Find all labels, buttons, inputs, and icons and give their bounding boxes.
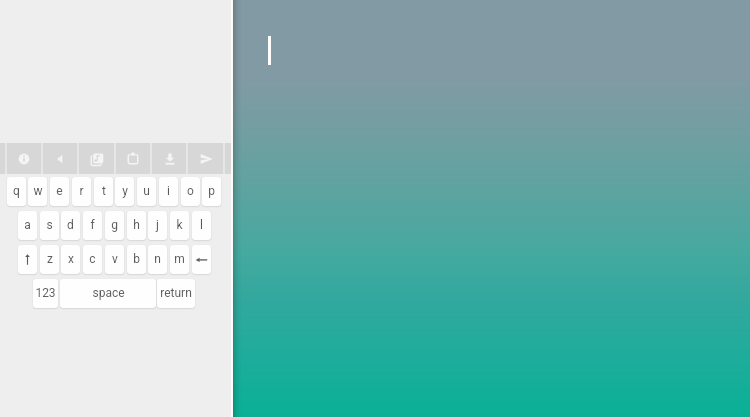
button[interactable]: u [137,177,156,206]
staticText: p [208,184,215,198]
staticText: h [133,218,140,232]
staticText: 123 [35,286,56,300]
staticText: m [174,252,185,266]
button[interactable]: n [148,245,167,274]
button[interactable]: Backspace [192,245,211,274]
staticText: w [33,184,43,198]
button[interactable]: c [83,245,102,274]
button[interactable]: e [50,177,69,206]
button[interactable]: q [7,177,26,206]
staticText: q [13,184,20,198]
button[interactable]: Shift [18,245,37,274]
staticText: o [187,184,194,198]
button[interactable]: space [60,279,156,308]
button[interactable]: Sound [43,143,78,174]
staticText: d [67,218,74,232]
staticText: u [143,184,150,198]
button[interactable]: x [61,245,80,274]
button[interactable]: o [181,177,200,206]
staticText: n [154,252,161,266]
staticText: a [24,218,31,232]
staticText: x [68,252,74,266]
staticText: j [156,218,159,232]
button[interactable]: i [159,177,178,206]
staticText: b [133,252,140,266]
button[interactable]: v [105,245,124,274]
staticText: space [92,286,125,300]
button[interactable]: Clipboard [115,143,150,174]
button[interactable]: j [148,211,167,240]
button[interactable]: p [202,177,221,206]
button[interactable]: z [40,245,59,274]
button[interactable]: w [28,177,47,206]
button[interactable]: Music library [79,143,114,174]
button[interactable]: m [170,245,189,274]
button[interactable]: return [157,279,195,308]
button[interactable]: g [105,211,124,240]
button[interactable]: Download [152,143,187,174]
button[interactable]: s [40,211,59,240]
button[interactable]: 123 [33,279,58,308]
staticText: t [102,184,106,198]
button[interactable]: d [61,211,80,240]
staticText: r [79,184,84,198]
staticText: i [167,184,170,198]
staticText: g [111,218,118,232]
button[interactable]: y [115,177,134,206]
button[interactable]: t [94,177,113,206]
button[interactable]: More [225,143,260,174]
button[interactable]: k [170,211,189,240]
staticText: c [89,252,96,266]
staticText: k [176,218,183,232]
button[interactable]: b [127,245,146,274]
staticText: y [122,184,128,198]
button[interactable]: Info [6,143,41,174]
button[interactable]: h [127,211,146,240]
staticText: s [46,218,53,232]
staticText: z [47,252,53,266]
button[interactable]: f [83,211,102,240]
button[interactable]: Send [188,143,223,174]
staticText: v [112,252,118,266]
button[interactable]: l [192,211,211,240]
button[interactable]: r [72,177,91,206]
staticText: l [200,218,203,232]
staticText: e [56,184,63,198]
staticText: return [160,286,192,300]
staticText: f [90,218,95,232]
button[interactable]: a [18,211,37,240]
